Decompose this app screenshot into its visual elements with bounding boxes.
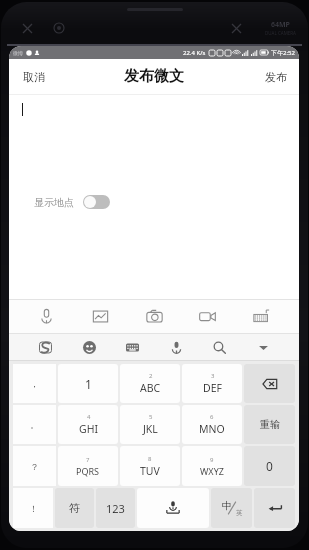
staticText: TUV [140,464,160,478]
staticText: MNO [199,422,225,436]
button[interactable]: 3 [182,364,242,403]
staticText: 123 [106,501,125,516]
staticText: 7 [86,456,90,464]
staticText: 发布微文 [124,67,184,86]
staticText: JKL [143,422,158,436]
staticText: ？ [30,461,39,472]
staticText: 5 [149,413,153,421]
button[interactable]: Video [191,300,224,333]
button[interactable]: Camera [138,300,171,333]
button[interactable]: Backspace [244,364,295,403]
button[interactable]: 发布 [253,62,299,92]
button[interactable]: 显示地点 [9,191,299,213]
staticText: 下午2:52 [271,49,295,57]
staticText: 显示地点 [34,196,74,209]
staticText: WXYZ [200,465,224,477]
button[interactable]: 8 [120,446,180,486]
staticText: 。 [30,419,39,430]
button[interactable]: Voice input [163,334,189,360]
button[interactable]: ！ [13,488,53,528]
button[interactable]: 1 [58,364,118,403]
staticText: 微博 [13,50,23,56]
button[interactable]: Space / voice input [137,488,209,528]
button[interactable]: 2 [120,364,180,403]
button[interactable]: Emoji [76,334,102,360]
staticText: 9 [210,456,214,464]
button[interactable]: Sogou [32,334,58,360]
button[interactable]: Switch Chinese English [211,488,252,528]
staticText: 英 [236,509,243,517]
button[interactable]: ？ [13,446,56,486]
staticText: ABC [140,381,161,395]
button[interactable]: 6 [182,405,242,444]
staticText: 取消 [23,70,45,84]
button[interactable]: 9 [182,446,242,486]
staticText: 3 [211,372,215,380]
staticText: 4 [87,413,91,421]
staticText: 中 [222,499,232,512]
button[interactable]: 123 [96,488,135,528]
staticText: DEF [203,381,222,395]
button[interactable]: Enter [254,488,295,528]
staticText: 22.4 K/s [183,49,206,57]
button[interactable]: Keyboard [245,300,278,333]
staticText: 8 [148,455,152,463]
button[interactable]: 4 [58,405,118,444]
staticText: GHI [79,422,98,436]
staticText: 符 [69,501,80,515]
button[interactable]: 重输 [244,405,295,444]
button[interactable]: Search [206,334,232,360]
staticText: 发布 [265,70,287,84]
staticText: 6 [210,413,214,421]
staticText: ， [30,378,39,389]
button[interactable]: More [250,334,276,360]
staticText: DUAL CAMERA [265,30,296,36]
staticText: 64MP [271,20,290,30]
button[interactable]: ， [13,364,56,403]
button[interactable]: Voice [30,300,63,333]
button[interactable]: Image [84,300,117,333]
button[interactable]: Keyboard layout [119,334,145,360]
staticText: 1 [85,376,92,392]
button[interactable]: 7 [58,446,118,486]
staticText: 2 [149,372,153,380]
button[interactable]: 符 [55,488,94,528]
button[interactable]: 0 [244,446,295,486]
staticText: 重输 [260,418,280,431]
button[interactable]: 5 [120,405,180,444]
staticText: 0 [266,458,273,474]
staticText: PQRS [76,465,100,477]
button[interactable]: 取消 [9,62,59,92]
staticText: ！ [29,503,38,514]
